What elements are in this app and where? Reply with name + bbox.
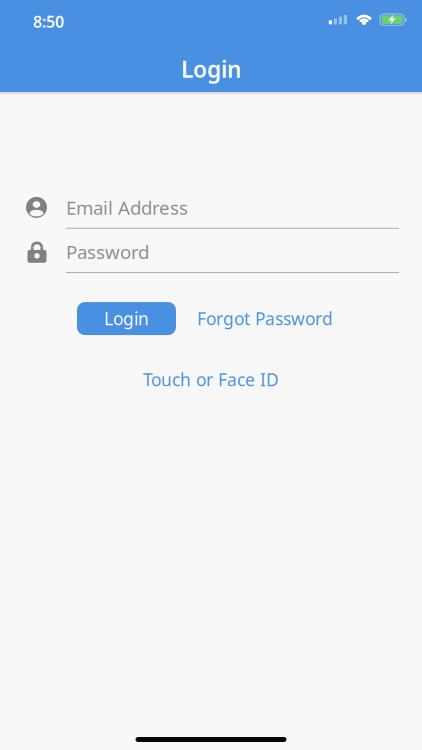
button[interactable]: Forgot Password <box>197 307 333 330</box>
staticText: Login <box>104 307 149 330</box>
staticText: Touch or Face ID <box>143 368 279 391</box>
staticText: 8:50 <box>33 11 64 32</box>
button[interactable]: Login <box>77 302 176 335</box>
staticText: Forgot Password <box>197 307 333 330</box>
staticText: Login <box>181 54 241 84</box>
staticText: Email Address <box>66 195 188 220</box>
button[interactable]: Touch or Face ID <box>143 368 279 391</box>
staticText: Password <box>66 239 149 264</box>
